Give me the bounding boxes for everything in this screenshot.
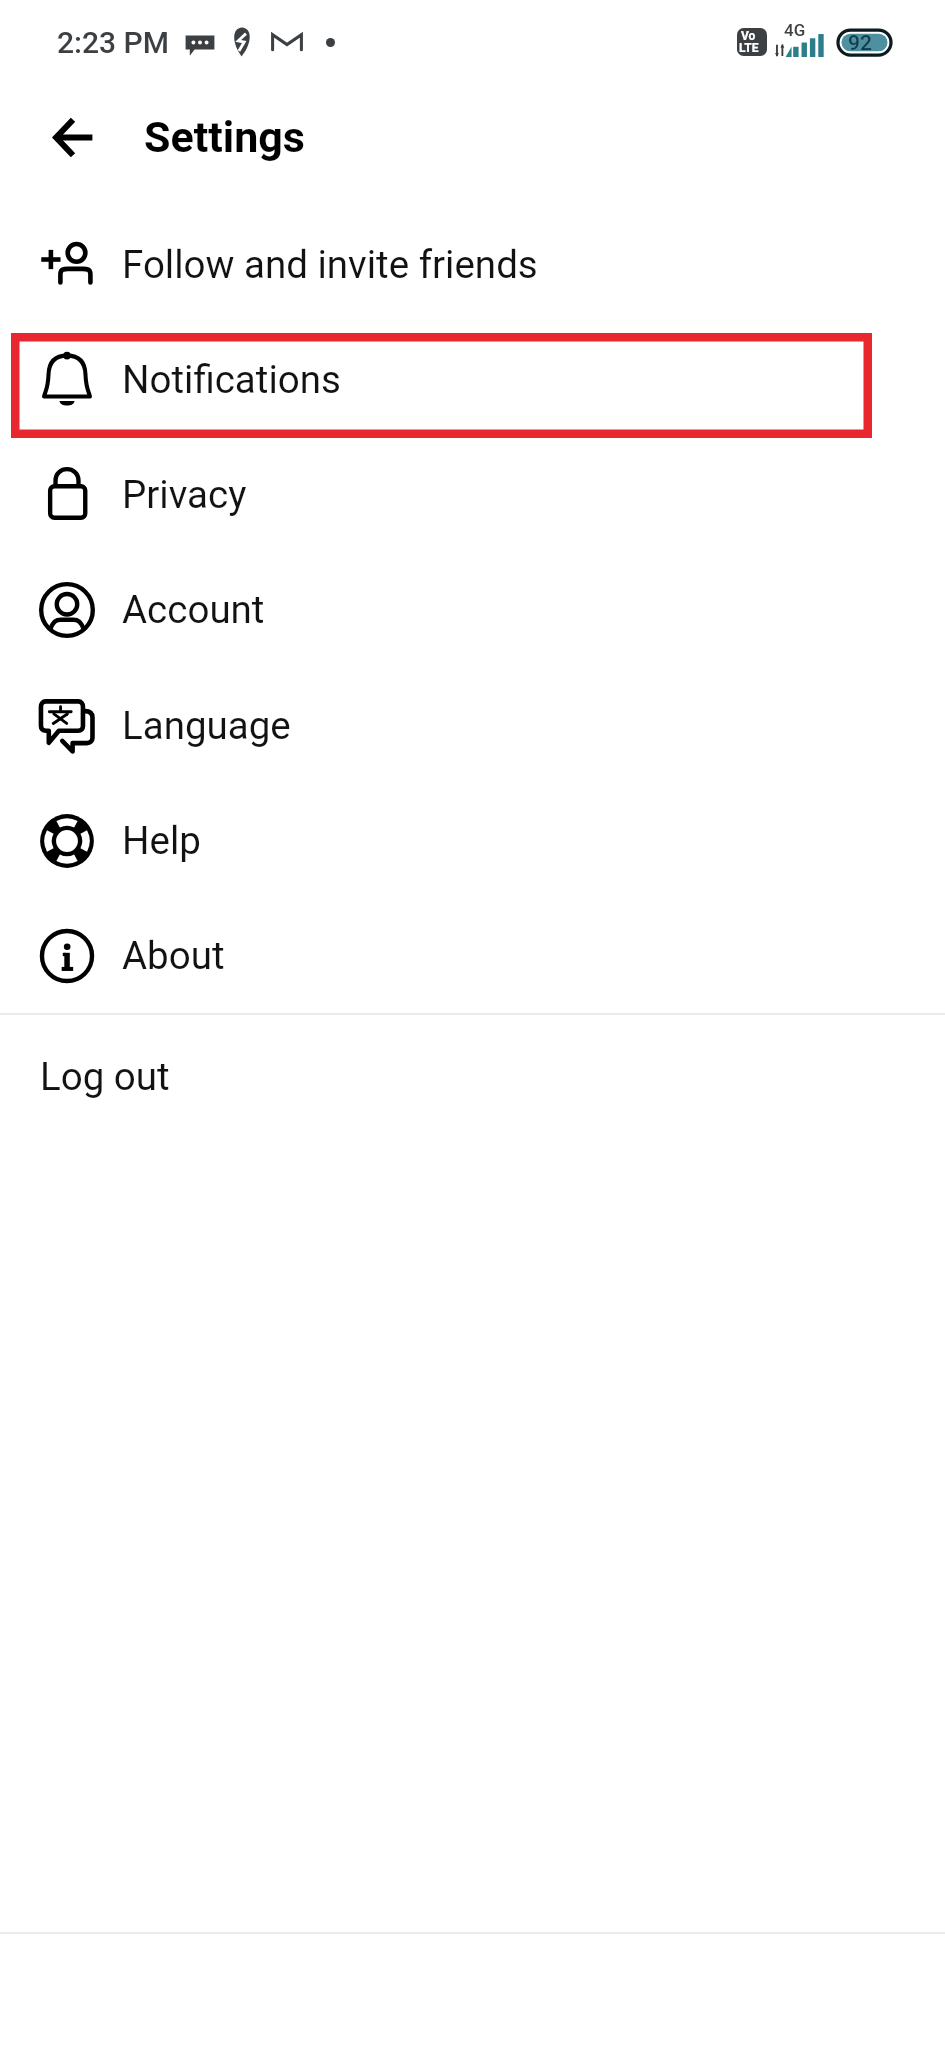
button[interactable]: Back bbox=[39, 103, 107, 171]
staticText: Vo bbox=[741, 29, 756, 43]
button[interactable]: Notifications bbox=[0, 322, 945, 437]
button[interactable]: Help bbox=[0, 783, 945, 898]
staticText: 2:23 PM bbox=[57, 25, 170, 60]
staticText: About bbox=[122, 933, 225, 978]
staticText: 92 bbox=[848, 31, 872, 56]
button[interactable]: Language bbox=[0, 668, 945, 783]
staticText: Settings bbox=[144, 112, 305, 162]
staticText: Privacy bbox=[122, 472, 247, 517]
staticText: Help bbox=[122, 818, 201, 863]
staticText: 4G bbox=[784, 20, 806, 40]
button[interactable]: Account bbox=[0, 552, 945, 667]
staticText: Language bbox=[122, 703, 291, 748]
staticText: Notifications bbox=[122, 357, 341, 402]
staticText: LTE bbox=[739, 41, 759, 55]
button[interactable]: About bbox=[0, 898, 945, 1013]
staticText: Account bbox=[122, 587, 265, 632]
button[interactable]: Log out bbox=[0, 1019, 945, 1134]
staticText: Log out bbox=[40, 1054, 170, 1099]
staticText: Follow and invite friends bbox=[122, 242, 538, 287]
button[interactable]: Privacy bbox=[0, 437, 945, 552]
button[interactable]: Follow and invite friends bbox=[0, 207, 945, 322]
